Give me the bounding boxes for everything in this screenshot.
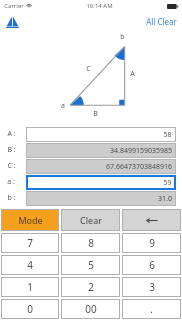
button[interactable]: 7 — [1, 233, 59, 253]
staticText: Mode — [18, 214, 43, 226]
staticText: C : — [7, 161, 16, 171]
staticText: B — [93, 109, 98, 119]
button[interactable]: B : — [0, 142, 182, 158]
button[interactable]: Backspace — [122, 209, 181, 231]
button[interactable]: 5 — [61, 255, 120, 275]
button[interactable]: 1 — [1, 277, 59, 297]
button[interactable]: 00 — [61, 299, 120, 319]
staticText: 0 — [27, 302, 33, 316]
staticText: 8 — [88, 236, 94, 250]
staticText: . — [150, 302, 153, 316]
staticText: Carrier — [4, 2, 24, 10]
staticText: 59 — [163, 178, 172, 188]
staticText: 1 — [27, 280, 33, 294]
button[interactable]: 6 — [122, 255, 181, 275]
button[interactable]: b : — [0, 190, 182, 206]
button[interactable]: 0 — [1, 299, 59, 319]
staticText: 3 — [149, 280, 155, 294]
button[interactable]: 4 — [1, 255, 59, 275]
staticText: a — [61, 101, 65, 111]
staticText: 9 — [149, 236, 155, 250]
button[interactable]: 8 — [61, 233, 120, 253]
button[interactable]: a : — [0, 174, 182, 190]
staticText: 6 — [149, 258, 155, 272]
staticText: 5 — [88, 258, 94, 272]
staticText: C — [86, 64, 91, 74]
button[interactable]: Mode — [1, 209, 59, 231]
staticText: 2 — [88, 280, 94, 294]
button[interactable]: App icon — [4, 13, 20, 29]
staticText: 67.66473703848916 — [106, 162, 172, 172]
button[interactable]: All Clear — [141, 14, 182, 29]
staticText: A — [130, 69, 135, 79]
staticText: 34.8499159035985 — [110, 146, 172, 156]
button[interactable]: Clear — [61, 209, 120, 231]
staticText: A : — [7, 129, 16, 139]
staticText: 4 — [27, 258, 33, 272]
staticText: 31.0 — [158, 194, 172, 204]
staticText: Clear — [80, 214, 102, 226]
button[interactable]: . — [122, 299, 181, 319]
staticText: 00 — [85, 302, 97, 316]
button[interactable]: A : — [0, 126, 182, 142]
button[interactable]: 9 — [122, 233, 181, 253]
staticText: a : — [7, 177, 15, 187]
staticText: 7 — [27, 236, 33, 250]
staticText: 10:14 AM — [86, 2, 113, 10]
button[interactable]: 2 — [61, 277, 120, 297]
staticText: All Clear — [146, 16, 177, 27]
button[interactable]: 3 — [122, 277, 181, 297]
staticText: b : — [7, 193, 16, 203]
staticText: B : — [7, 145, 16, 155]
staticText: 58 — [163, 130, 172, 140]
staticText: b — [120, 32, 125, 42]
button[interactable]: C : — [0, 158, 182, 174]
